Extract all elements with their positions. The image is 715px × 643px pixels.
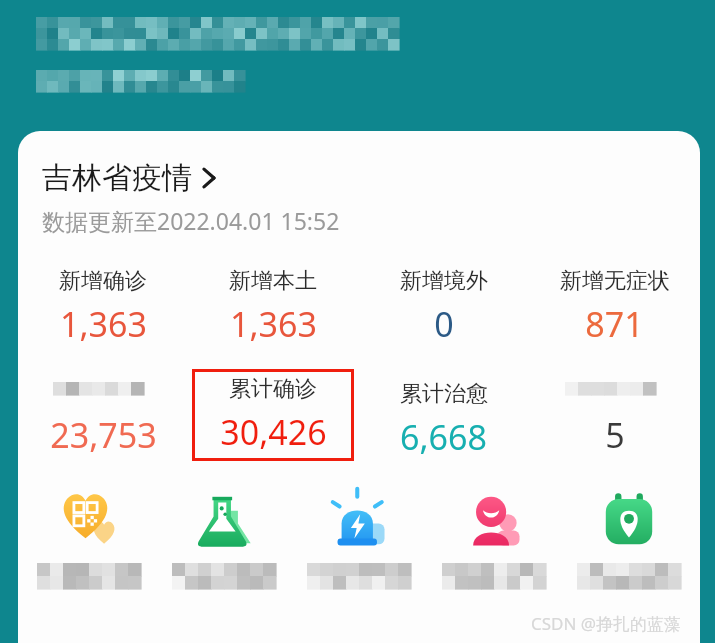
staticText: 新增无症状 — [560, 267, 670, 295]
button[interactable]: 新增无症状 — [529, 267, 700, 347]
staticText: 新增境外 — [400, 267, 488, 295]
staticText: 0 — [434, 301, 454, 347]
button[interactable]: 5 — [529, 382, 700, 458]
staticText: CSDN @挣扎的蓝藻 — [531, 612, 682, 635]
staticText: 累计确诊 — [229, 375, 317, 403]
button[interactable]: 风险地区 — [561, 491, 696, 593]
staticText: 累计治愈 — [400, 380, 488, 408]
button[interactable]: 23,753 — [18, 382, 188, 458]
staticText: 30,426 — [220, 409, 327, 455]
staticText: 5 — [605, 412, 625, 458]
button[interactable]: 患者同行 — [426, 491, 561, 593]
button[interactable]: 核酸检测 — [156, 491, 291, 593]
button[interactable]: 健康码 — [22, 491, 156, 593]
staticText: 871 — [585, 301, 644, 347]
staticText: 23,753 — [50, 412, 157, 458]
button[interactable]: 新增确诊 — [18, 267, 188, 347]
button[interactable]: 吉林省疫情 — [42, 159, 218, 197]
staticText: 吉林省疫情 — [42, 159, 192, 197]
staticText: 1,363 — [60, 301, 147, 347]
button[interactable]: 累计确诊 — [192, 375, 354, 455]
button[interactable]: 累计治愈 — [358, 380, 529, 460]
staticText: 新增本土 — [229, 267, 317, 295]
button[interactable]: 新增本土 — [188, 267, 358, 347]
staticText: 新增确诊 — [59, 267, 147, 295]
button[interactable]: 新增境外 — [358, 267, 529, 347]
staticText: 6,668 — [400, 414, 487, 460]
staticText: 数据更新至2022.04.01 15:52 — [42, 205, 340, 236]
button[interactable]: 疫情速报 — [291, 491, 426, 593]
staticText: 1,363 — [230, 301, 317, 347]
